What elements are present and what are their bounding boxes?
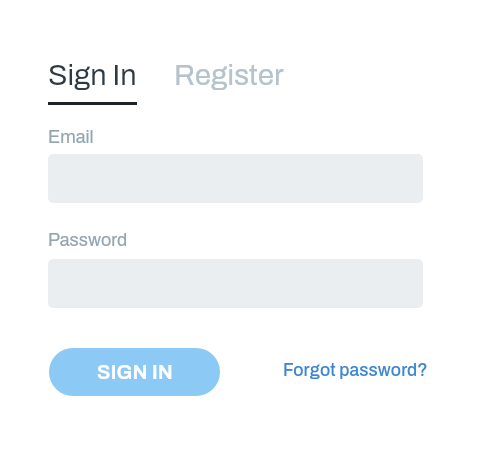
button[interactable]: SIGN IN xyxy=(49,348,220,396)
staticText: Email xyxy=(48,127,94,147)
staticText: Sign In xyxy=(48,60,137,92)
staticText: Register xyxy=(174,60,284,92)
staticText: Forgot password? xyxy=(283,361,428,380)
button[interactable]: Sign In xyxy=(48,60,137,92)
staticText: SIGN IN xyxy=(97,361,173,383)
button[interactable]: Forgot password? xyxy=(283,361,428,380)
button[interactable]: Register xyxy=(174,60,284,92)
staticText: Password xyxy=(48,230,128,250)
